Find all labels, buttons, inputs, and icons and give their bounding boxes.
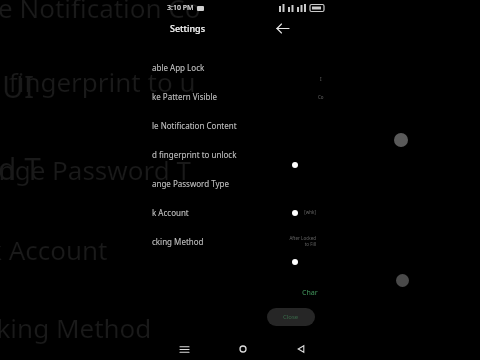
button[interactable]: Char	[300, 286, 320, 300]
staticText: Char	[302, 288, 318, 298]
staticText: d T	[0, 148, 41, 189]
staticText: k Account	[0, 232, 108, 267]
staticText: le Notification Content	[152, 120, 237, 131]
staticText: ke Pattern Visible	[152, 91, 218, 102]
staticText: Close	[283, 313, 299, 321]
staticText: [whk]	[304, 209, 316, 215]
staticText: d fingerprint to u	[0, 64, 196, 99]
button[interactable]: d fingerprint to unlock	[0, 140, 480, 168]
staticText: Settings	[170, 22, 206, 34]
staticText: d fingerprint to unlock	[152, 149, 237, 160]
staticText: k Account	[152, 207, 189, 218]
staticText: able App Lock	[152, 62, 205, 73]
button[interactable]: le Notification Content	[0, 111, 480, 139]
button[interactable]: Home	[214, 338, 272, 360]
button[interactable]: ange Password Type	[0, 169, 480, 197]
staticText: UI	[2, 66, 35, 107]
button[interactable]: cking Method	[0, 227, 480, 255]
button[interactable]: Recent apps	[155, 338, 214, 360]
button[interactable]: Back	[272, 338, 330, 360]
button[interactable]: Toggle	[292, 259, 298, 265]
button[interactable]: Settings	[168, 16, 208, 40]
staticText: After Locked to Fill	[289, 235, 316, 247]
button[interactable]: Toggle	[292, 162, 298, 168]
staticText: ange Password T	[0, 152, 191, 187]
staticText: cking Method	[152, 236, 204, 247]
button[interactable]: able App Lock	[0, 53, 480, 81]
button[interactable]: Close	[267, 308, 315, 326]
button[interactable]: k Account	[0, 198, 480, 226]
staticText: 3:10 PM	[167, 3, 194, 13]
staticText: de Notification Co	[0, 0, 201, 25]
staticText: Co	[318, 94, 324, 100]
button[interactable]: Toggle	[292, 210, 298, 216]
button[interactable]: Back	[270, 16, 294, 40]
staticText: ange Password Type	[152, 178, 230, 189]
staticText: I	[320, 76, 322, 83]
staticText: cking Method	[0, 310, 152, 345]
button[interactable]: ke Pattern Visible	[0, 82, 480, 110]
